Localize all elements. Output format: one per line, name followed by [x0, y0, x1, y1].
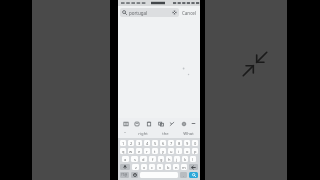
button[interactable]: Exit fullscreen [241, 50, 269, 78]
button[interactable]: e [136, 148, 142, 154]
button[interactable]: 4 [144, 140, 150, 146]
button[interactable]: a [122, 156, 129, 162]
button[interactable]: y [160, 148, 166, 154]
button[interactable]: z [132, 164, 139, 170]
staticText: " [124, 131, 126, 137]
staticText: portugal [129, 10, 172, 16]
button[interactable]: h [166, 156, 172, 162]
button[interactable]: s [131, 156, 138, 162]
button[interactable]: Shift [120, 164, 130, 170]
staticText: f [152, 157, 154, 162]
staticText: ?1@ [121, 173, 128, 177]
button[interactable]: b [165, 164, 171, 170]
staticText: g [160, 157, 163, 162]
button[interactable]: v [157, 164, 163, 170]
button[interactable]: More [190, 120, 197, 127]
staticText: v [159, 165, 162, 170]
button[interactable]: i [176, 148, 182, 154]
staticText: the [162, 131, 169, 137]
button[interactable]: Settings [179, 119, 188, 128]
staticText: d [142, 157, 145, 162]
staticText: 0 [194, 141, 197, 146]
staticText: 7 [170, 141, 173, 146]
staticText: l [192, 157, 194, 162]
staticText: 5 [154, 141, 157, 146]
button[interactable]: What [177, 129, 200, 138]
button[interactable]: Emoji [131, 172, 138, 178]
staticText: n [175, 165, 178, 170]
button[interactable]: the [154, 129, 177, 138]
staticText: c [151, 165, 153, 170]
button[interactable]: 2 [128, 140, 134, 146]
button[interactable]: 5 [152, 140, 158, 146]
button[interactable]: n [173, 164, 179, 170]
button[interactable]: Stickers [121, 119, 130, 128]
staticText: h [168, 157, 171, 162]
staticText: u [170, 149, 173, 154]
staticText: What [183, 131, 194, 137]
staticText: e [138, 149, 141, 154]
staticText: b [167, 165, 170, 170]
staticText: t [154, 149, 156, 154]
staticText: r [146, 149, 148, 154]
button[interactable]: 1 [120, 140, 126, 146]
button[interactable]: 7 [168, 140, 174, 146]
staticText: z [135, 165, 137, 170]
staticText: q [122, 149, 125, 154]
button[interactable]: k [182, 156, 188, 162]
button[interactable]: Clear [172, 10, 177, 15]
staticText: 6 [162, 141, 165, 146]
staticText: 8 [178, 141, 181, 146]
button[interactable]: c [149, 164, 155, 170]
staticText: o [186, 149, 189, 154]
button[interactable]: Symbols [120, 172, 129, 178]
staticText: 1 [122, 141, 125, 146]
button[interactable]: 0 [192, 140, 198, 146]
staticText: p [194, 149, 197, 154]
button[interactable]: Backspace [189, 164, 198, 170]
button[interactable]: t [152, 148, 158, 154]
staticText: Cancel [182, 10, 197, 16]
button[interactable]: Translate [156, 119, 165, 128]
button[interactable]: l [190, 156, 196, 162]
button[interactable]: Period [180, 172, 187, 178]
button[interactable]: u [168, 148, 174, 154]
button[interactable]: 8 [176, 140, 182, 146]
button[interactable]: right [131, 129, 154, 138]
button[interactable]: d [140, 156, 147, 162]
staticText: k [184, 157, 187, 162]
button[interactable]: w [128, 148, 134, 154]
button[interactable]: Search [189, 172, 198, 178]
button[interactable]: q [120, 148, 126, 154]
button[interactable]: r [144, 148, 150, 154]
button[interactable]: m [181, 164, 187, 170]
button[interactable]: f [149, 156, 156, 162]
button[interactable]: 3 [136, 140, 142, 146]
button[interactable]: g [158, 156, 164, 162]
button[interactable]: GIF [132, 119, 141, 128]
staticText: 9 [186, 141, 189, 146]
staticText: 2 [130, 141, 133, 146]
button[interactable]: 6 [160, 140, 166, 146]
button[interactable]: " [118, 129, 131, 138]
staticText: 3 [138, 141, 141, 146]
button[interactable]: 9 [184, 140, 190, 146]
staticText: . [183, 173, 185, 178]
staticText: 4 [146, 141, 149, 146]
staticText: w [129, 149, 133, 154]
staticText: right [138, 131, 148, 137]
staticText: i [178, 149, 180, 154]
button[interactable]: o [184, 148, 190, 154]
button[interactable]: Clipboard [144, 119, 153, 128]
staticText: a [124, 157, 127, 162]
staticText: x [143, 165, 146, 170]
staticText: j [176, 157, 178, 162]
button[interactable]: p [192, 148, 198, 154]
button[interactable]: j [174, 156, 180, 162]
staticText: y [162, 149, 165, 154]
button[interactable]: portugal [120, 8, 179, 17]
button[interactable]: x [141, 164, 147, 170]
button[interactable]: Cancel [181, 10, 198, 16]
button[interactable]: Handwriting [167, 119, 176, 128]
